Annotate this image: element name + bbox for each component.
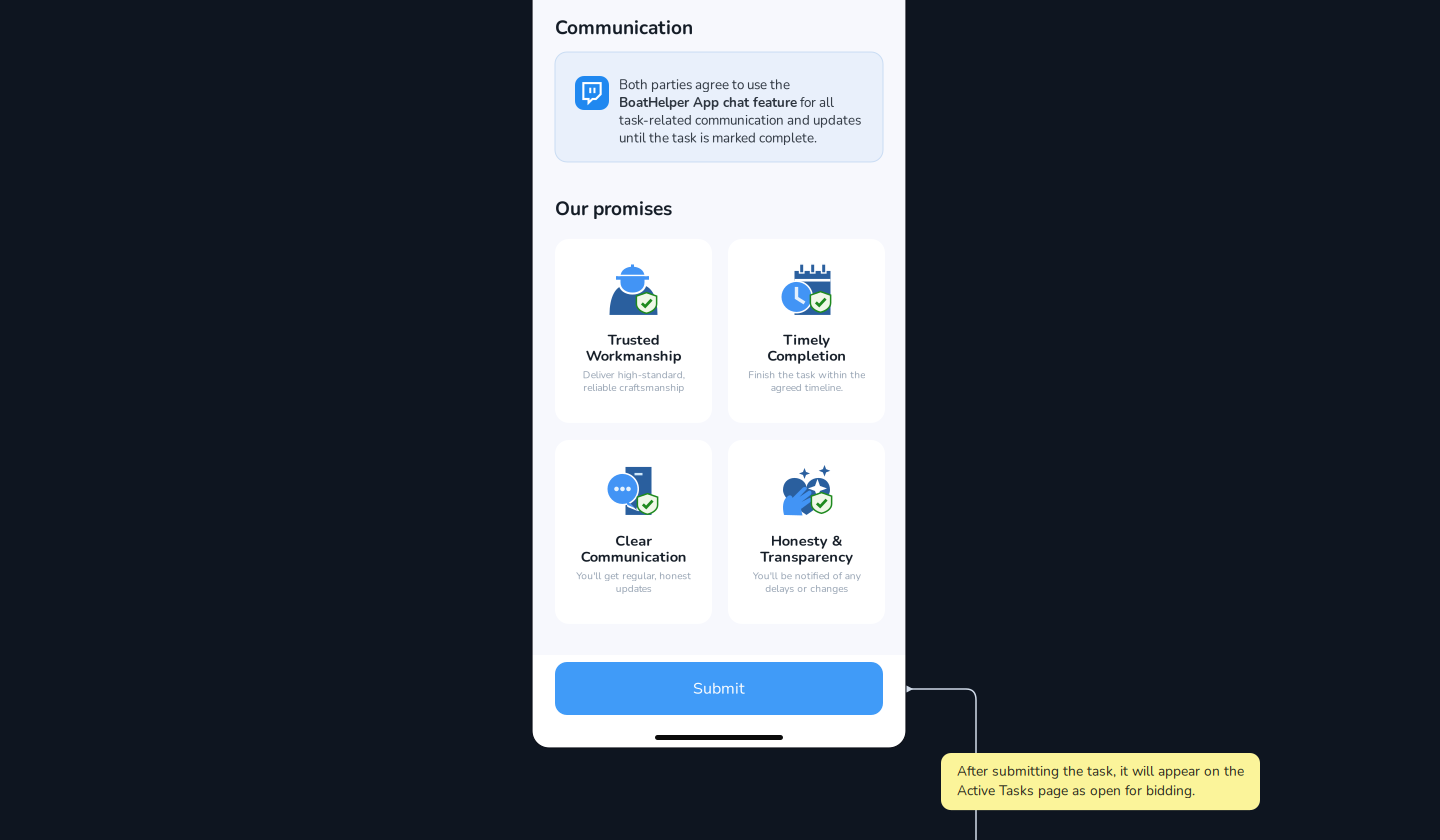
staticText: Honesty & Transparency [760,531,853,567]
staticText: Communication [555,15,693,41]
staticText: After submitting the task, it will appea… [957,762,1244,800]
staticText: Both parties agree to use the BoatHelper… [619,76,861,147]
staticText: You'll get regular, honest updates [576,569,691,596]
staticText: Our promises [555,196,672,222]
button[interactable]: Clear Communication [555,440,712,624]
staticText: Trusted Workmanship [585,330,681,366]
staticText: You'll be notified of any delays or chan… [752,569,860,596]
button[interactable]: Timely Completion [728,239,885,423]
button[interactable]: Honesty & Transparency [728,440,885,624]
button[interactable]: Submit [555,662,883,715]
staticText: Finish the task within the agreed timeli… [748,368,865,395]
staticText: Deliver high-standard, reliable craftsma… [582,368,684,395]
button[interactable]: Trusted Workmanship [555,239,712,423]
staticText: Timely Completion [767,330,846,366]
staticText: Clear Communication [580,531,686,567]
staticText: Submit [693,678,745,699]
